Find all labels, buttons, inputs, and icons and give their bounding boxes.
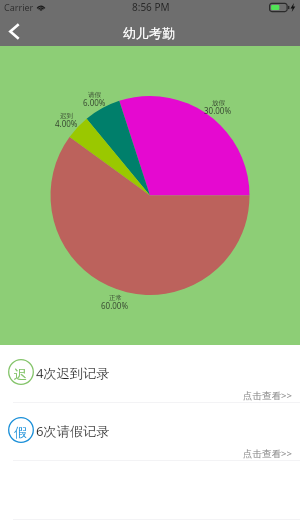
- staticText: 迟到: [60, 112, 73, 120]
- staticText: 30.00%: [204, 105, 232, 116]
- staticText: 点击查看>>: [243, 447, 292, 460]
- staticText: 迟: [14, 366, 27, 382]
- button[interactable]: 假: [0, 403, 300, 461]
- staticText: 点击查看>>: [243, 389, 292, 402]
- button[interactable]: Back: [0, 20, 30, 46]
- staticText: 请假: [88, 91, 101, 99]
- staticText: 4.00%: [55, 118, 78, 129]
- staticText: 6次请假记录: [36, 422, 110, 440]
- staticText: 假: [14, 424, 27, 440]
- staticText: 幼儿考勤: [123, 25, 175, 41]
- staticText: 8:56 PM: [132, 0, 170, 14]
- button[interactable]: 迟: [0, 345, 300, 403]
- staticText: 放假: [212, 99, 225, 107]
- staticText: 60.00%: [101, 300, 129, 311]
- staticText: 6.00%: [83, 97, 106, 108]
- staticText: 4次迟到记录: [36, 364, 110, 382]
- staticText: 正常: [109, 294, 122, 302]
- staticText: Carrier: [4, 1, 34, 13]
